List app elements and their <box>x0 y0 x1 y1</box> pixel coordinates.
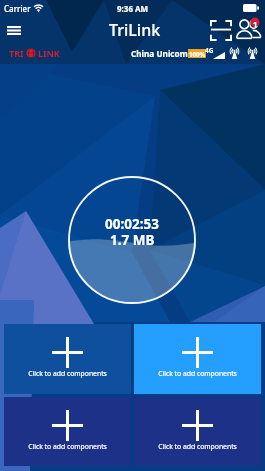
staticText: 100% <box>189 50 206 58</box>
staticText: Click to add components <box>4 442 131 451</box>
staticText: 1 <box>253 19 258 29</box>
staticText: TriLink <box>109 19 161 41</box>
staticText: Click to add components <box>134 369 261 378</box>
button[interactable]: Click to add components <box>134 324 261 394</box>
staticText: China Unicom <box>131 48 188 59</box>
staticText: Click to add components <box>4 369 131 378</box>
button[interactable]: Click to add components <box>134 397 261 466</box>
staticText: Carrier <box>4 3 31 14</box>
staticText: 4G <box>205 46 214 55</box>
staticText: TRI <box>9 47 24 59</box>
staticText: 00:02:53 <box>105 215 159 233</box>
staticText: Click to add components <box>134 442 261 451</box>
button[interactable]: TriLink logo <box>9 47 60 59</box>
button[interactable]: Contacts, 1 new <box>234 17 263 43</box>
staticText: 9:36 AM <box>117 3 149 14</box>
staticText: LINK <box>38 47 60 59</box>
staticText: 1.7 MB <box>110 231 155 249</box>
button[interactable]: Scan QR code <box>208 18 234 42</box>
button[interactable]: Click to add components <box>4 324 131 394</box>
button[interactable]: Click to add components <box>4 397 131 466</box>
button[interactable]: Open navigation menu <box>2 18 26 42</box>
